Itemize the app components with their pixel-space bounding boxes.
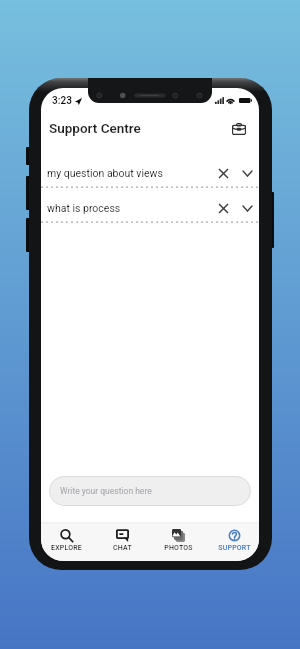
staticText: 3:23 [52, 95, 72, 107]
staticText: my question about views [47, 167, 163, 179]
button[interactable]: Support Centre [49, 120, 141, 136]
staticText: PHOTOS [164, 544, 193, 552]
staticText: Support Centre [49, 120, 141, 136]
button[interactable]: Write your question here [49, 476, 251, 506]
button[interactable]: Dismiss [214, 199, 232, 217]
button[interactable]: Expand [238, 164, 256, 182]
staticText: CHAT [113, 544, 132, 552]
button[interactable]: Work [229, 118, 249, 138]
button[interactable]: EXPLORE [41, 525, 93, 561]
button[interactable]: SUPPORT [207, 525, 259, 561]
button[interactable]: Dismiss [214, 164, 232, 182]
button[interactable]: my question about views [41, 153, 259, 188]
button[interactable]: PHOTOS [151, 525, 205, 561]
button[interactable]: Expand [238, 199, 256, 217]
staticText: SUPPORT [218, 544, 251, 552]
button[interactable]: what is process [41, 188, 259, 223]
staticText: what is process [47, 202, 121, 214]
staticText: EXPLORE [51, 544, 82, 552]
button[interactable]: CHAT [95, 525, 149, 561]
staticText: Write your question here [60, 486, 152, 496]
